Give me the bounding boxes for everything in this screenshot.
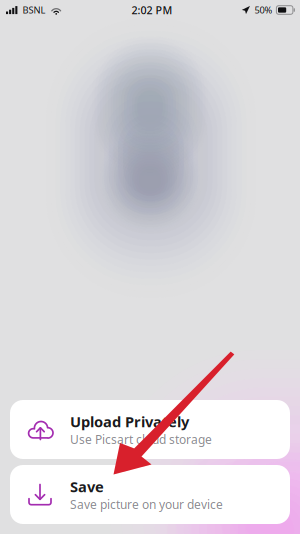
staticText: 50% [254, 4, 272, 16]
button[interactable]: Upload Privately [10, 400, 290, 459]
staticText: Upload Privately [70, 412, 189, 431]
staticText: BSNL [22, 4, 45, 16]
staticText: Save picture on your device [70, 496, 223, 512]
staticText: Save [70, 477, 104, 496]
staticText: 2:02 PM [131, 3, 172, 17]
button[interactable]: Save [10, 465, 290, 524]
staticText: Use Picsart cloud storage [70, 431, 212, 447]
